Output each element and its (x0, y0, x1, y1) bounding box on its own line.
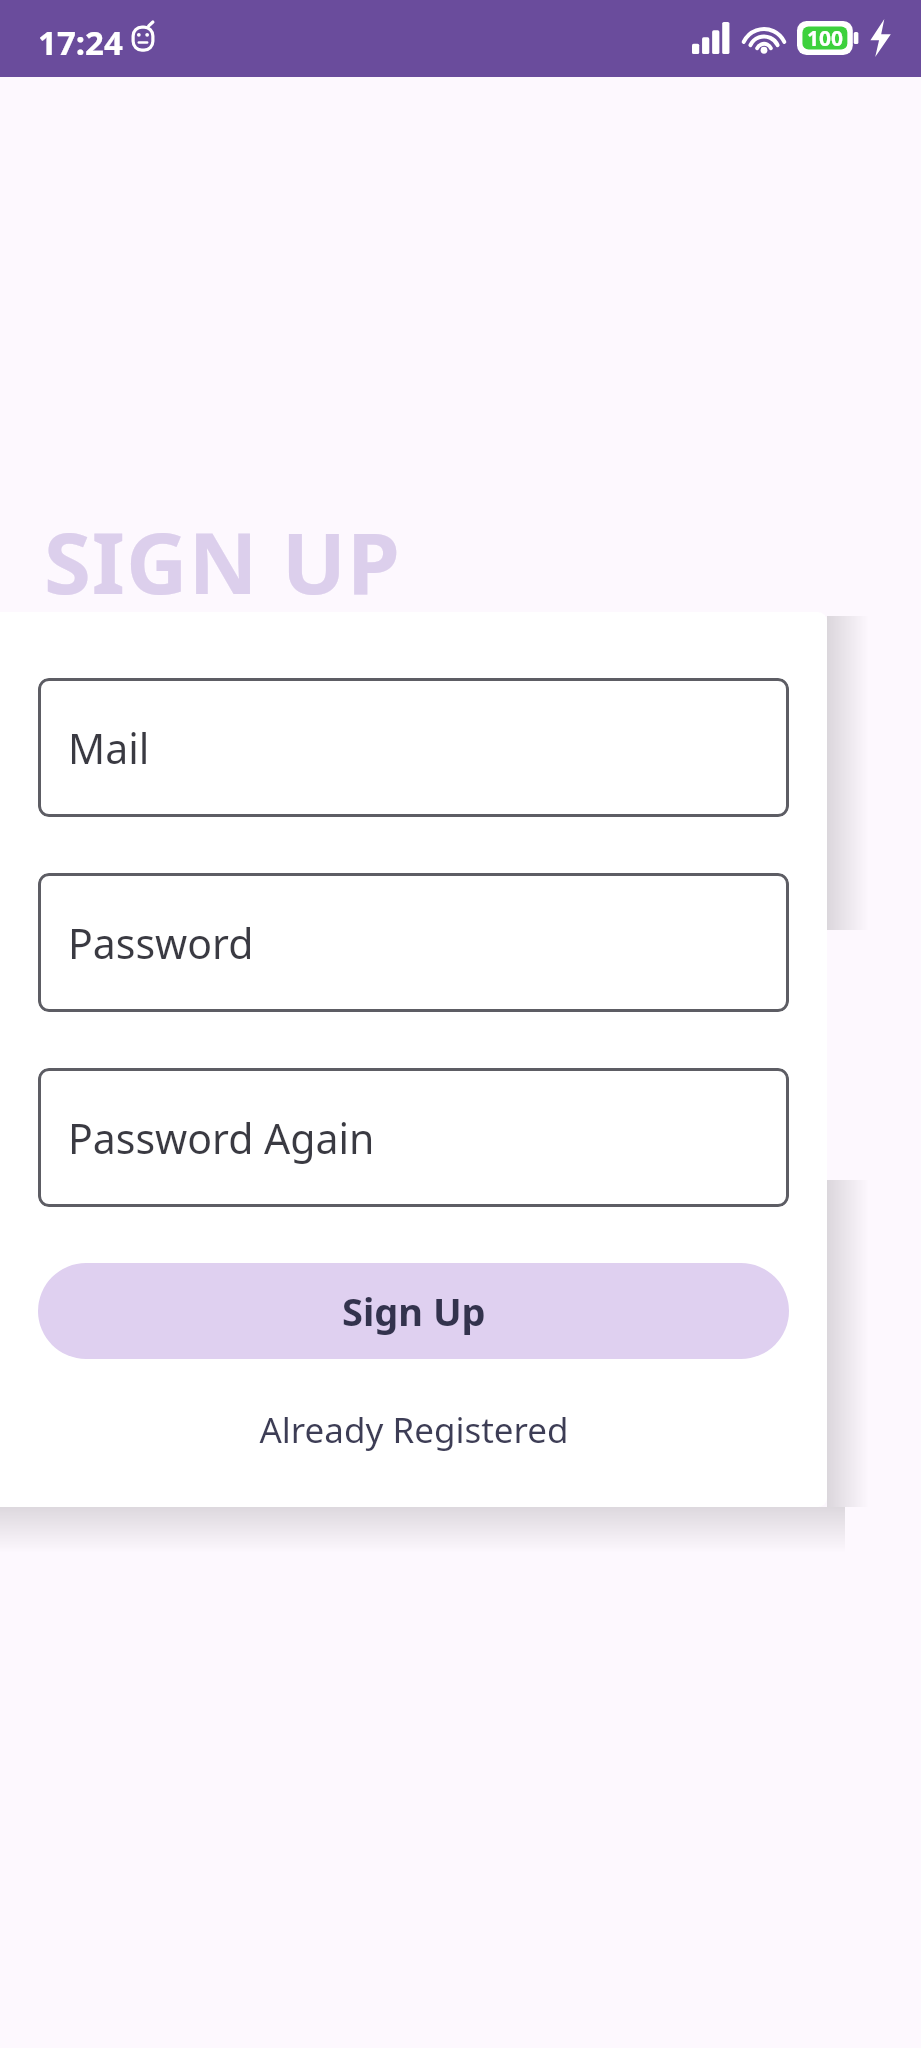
button[interactable]: Password Again (38, 1068, 789, 1207)
staticText: Sign Up (342, 1285, 486, 1337)
staticText: Password Again (68, 1110, 375, 1166)
button[interactable]: Mail (38, 678, 789, 817)
staticText: Password (68, 915, 254, 971)
staticText: Mail (68, 720, 150, 776)
staticText: Already Registered (259, 1406, 569, 1454)
button[interactable]: Sign Up (38, 1263, 789, 1359)
button[interactable]: Already Registered (38, 1394, 789, 1466)
staticText: SIGN UP (44, 503, 401, 619)
staticText: 100 (807, 24, 844, 53)
button[interactable]: Password (38, 873, 789, 1012)
staticText: 17:24 (38, 20, 123, 65)
